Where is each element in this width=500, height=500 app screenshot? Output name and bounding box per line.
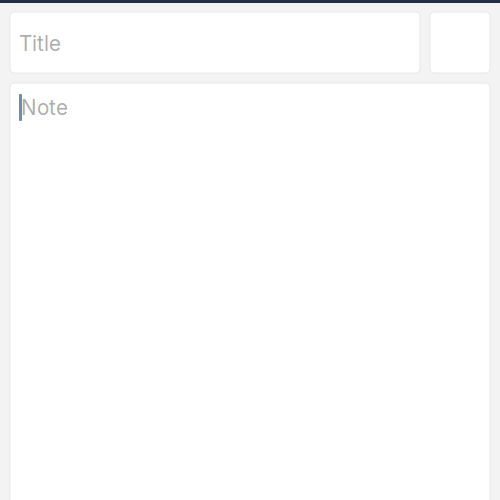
- staticText: Title: [19, 31, 61, 56]
- button[interactable]: Add: [430, 12, 490, 73]
- staticText: Note: [21, 95, 68, 120]
- button[interactable]: Note: [10, 83, 490, 500]
- button[interactable]: Title: [10, 12, 420, 73]
